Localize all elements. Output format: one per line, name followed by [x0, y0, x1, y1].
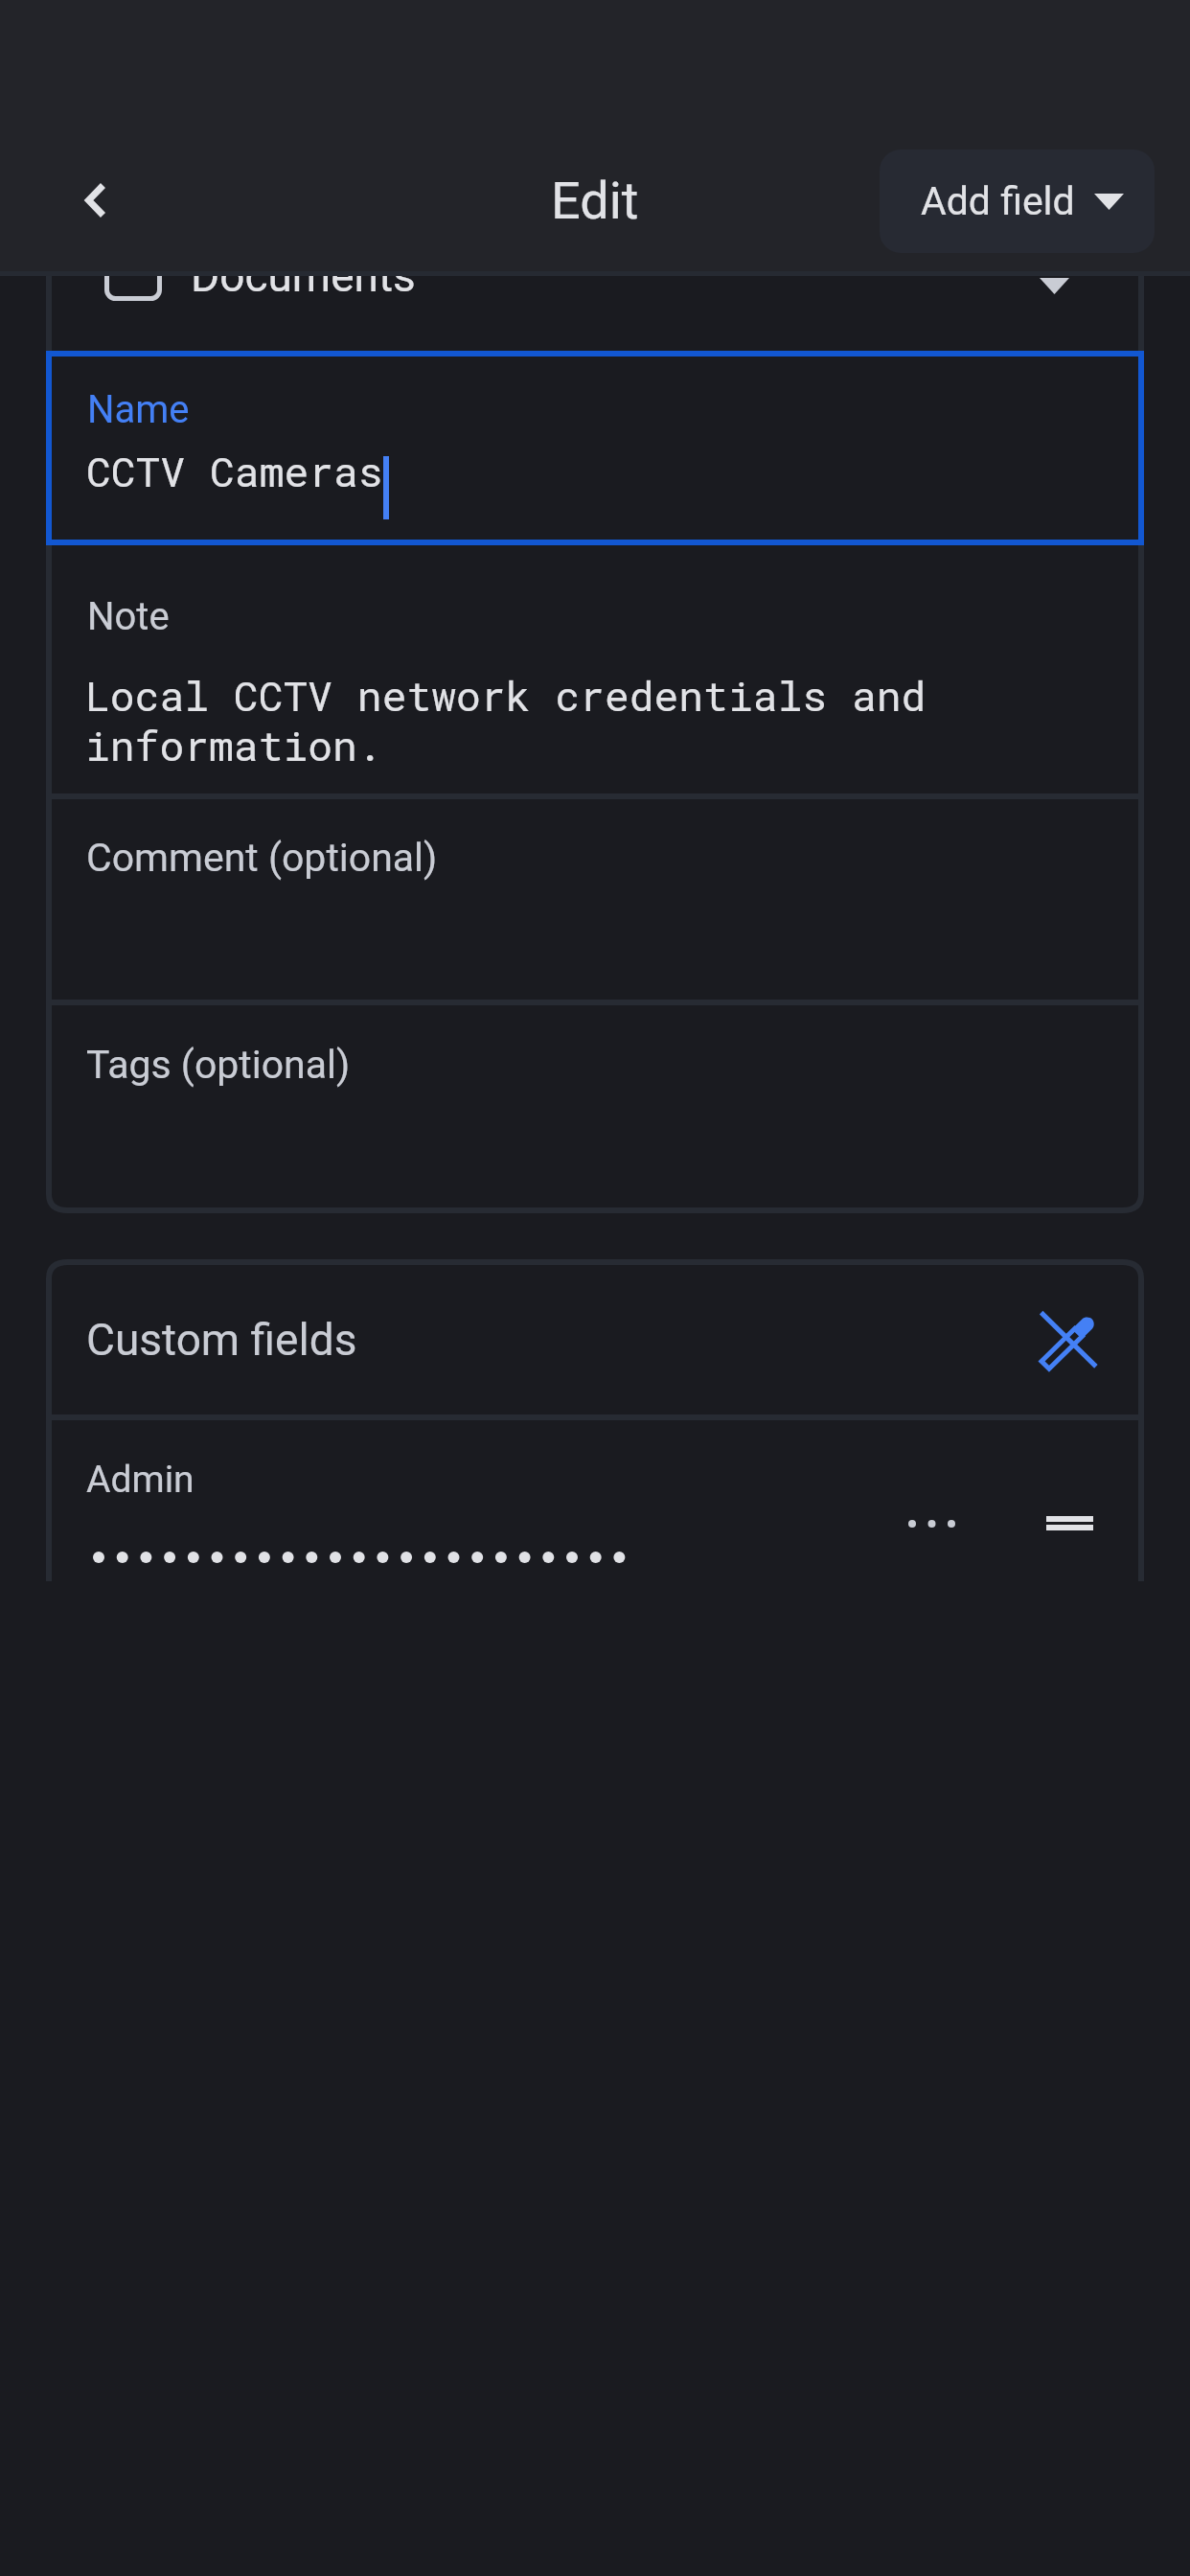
- button[interactable]: Documents: [46, 276, 1144, 351]
- staticText: Local CCTV network credentials and infor…: [85, 668, 927, 772]
- button[interactable]: Comment (optional): [46, 799, 1144, 1005]
- staticText: Documents: [191, 276, 416, 302]
- button[interactable]: Admin: [46, 1420, 1144, 1581]
- button[interactable]: Disable editing: [995, 1267, 1139, 1411]
- button[interactable]: Back: [38, 148, 153, 253]
- staticText: CCTV Cameras: [86, 444, 383, 498]
- staticText: Admin: [86, 1458, 195, 1502]
- staticText: Custom fields: [86, 1314, 357, 1366]
- staticText: Tags (optional): [86, 1042, 351, 1088]
- button[interactable]: More options: [885, 1478, 977, 1570]
- staticText: Comment (optional): [86, 835, 438, 881]
- staticText: Name: [87, 387, 190, 432]
- button[interactable]: Custom fields: [46, 1259, 1144, 1420]
- button[interactable]: Note: [46, 545, 1144, 799]
- button[interactable]: Tags (optional): [46, 1005, 1144, 1213]
- button[interactable]: Add field: [880, 149, 1155, 253]
- staticText: Edit: [551, 171, 639, 231]
- button[interactable]: Reorder field: [1023, 1478, 1115, 1570]
- staticText: Add field: [921, 178, 1075, 224]
- button[interactable]: Name: [46, 351, 1144, 545]
- staticText: Note: [87, 594, 170, 639]
